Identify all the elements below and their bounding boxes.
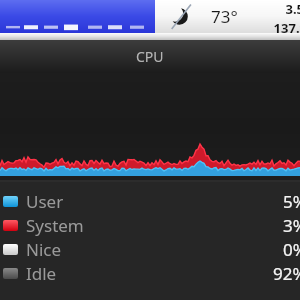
staticText: 0% xyxy=(283,238,300,261)
staticText: 5% xyxy=(283,190,300,213)
button[interactable]: Idle xyxy=(0,261,300,285)
staticText: 137.9 xyxy=(252,19,300,33)
staticText: Nice xyxy=(26,238,62,261)
staticText: System xyxy=(26,214,84,237)
staticText: 3.5 xyxy=(252,0,300,18)
staticText: Idle xyxy=(26,262,57,285)
staticText: User xyxy=(26,190,64,213)
staticText: CPU xyxy=(136,47,164,66)
staticText: 73° xyxy=(211,5,238,28)
button[interactable]: 3.5 xyxy=(252,0,300,33)
button[interactable]: Weather, night xyxy=(163,0,197,33)
button[interactable]: System xyxy=(0,213,300,237)
button[interactable]: Nice xyxy=(0,237,300,261)
staticText: 92% xyxy=(273,262,300,285)
button[interactable]: CPU history xyxy=(0,0,155,33)
button[interactable]: 73° xyxy=(198,0,250,33)
button[interactable]: User xyxy=(0,189,300,213)
staticText: 3% xyxy=(283,214,300,237)
